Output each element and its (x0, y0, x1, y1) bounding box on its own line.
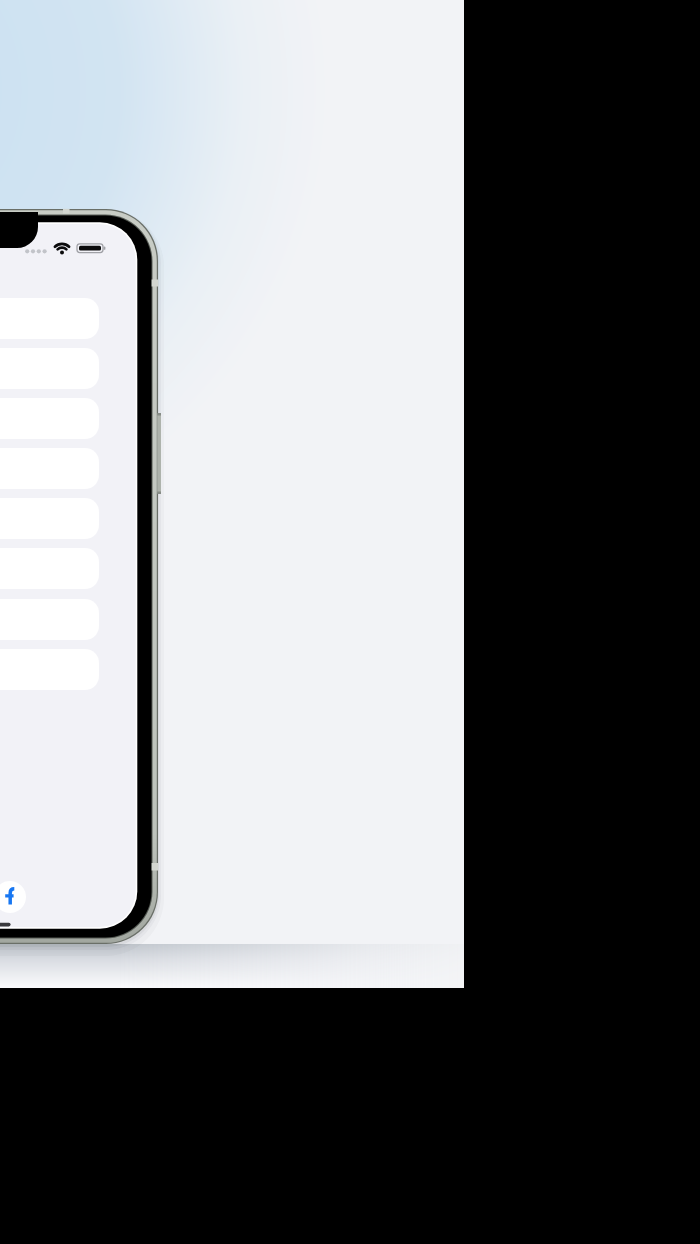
button[interactable] (0, 881, 26, 913)
